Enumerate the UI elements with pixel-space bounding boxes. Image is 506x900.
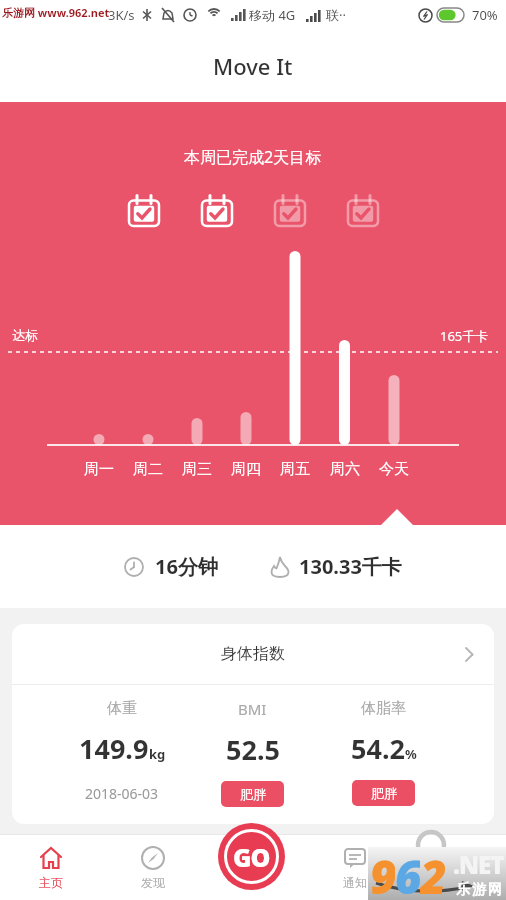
staticText: 通知 — [343, 875, 367, 890]
staticText: 16分钟 — [155, 553, 218, 580]
staticText: 本周已完成2天目标 — [184, 146, 322, 168]
staticText: Move It — [213, 51, 293, 81]
staticText: 6 — [395, 845, 420, 898]
staticText: 149.9 — [79, 730, 149, 767]
button[interactable]: 肥胖 — [221, 781, 284, 807]
staticText: 54.2 — [351, 730, 405, 767]
staticText: 2018-06-03 — [85, 784, 159, 803]
button[interactable]: 通知 — [304, 835, 405, 900]
staticText: .NET — [453, 848, 504, 881]
button[interactable]: 肥胖 — [352, 780, 415, 806]
staticText: 3K/s — [108, 6, 135, 24]
staticText: 52.5 — [226, 731, 280, 768]
staticText: 联·· — [326, 6, 346, 24]
button[interactable]: 周二 — [124, 460, 172, 479]
button[interactable]: 周三 — [173, 460, 221, 479]
button[interactable]: 周四 — [222, 460, 270, 479]
staticText: GO — [233, 840, 270, 874]
staticText: 身体指数 — [221, 644, 285, 664]
staticText: 移动 4G — [249, 6, 296, 24]
staticText: 我的 — [444, 875, 468, 890]
button[interactable]: 周六 — [321, 460, 369, 479]
staticText: 主页 — [39, 875, 63, 890]
staticText: 130.33千卡 — [299, 553, 402, 580]
staticText: 乐游网 www.962.net — [2, 5, 110, 20]
staticText: 165千卡 — [440, 327, 489, 345]
button[interactable]: 发现 — [102, 835, 203, 900]
button[interactable]: GO — [218, 823, 285, 890]
staticText: 2 — [420, 845, 445, 898]
staticText: 肥胖 — [371, 785, 397, 801]
staticText: 发现 — [141, 875, 165, 890]
staticText: kg — [149, 745, 166, 763]
staticText: BMI — [238, 699, 267, 719]
staticText: 9 — [370, 845, 395, 898]
button[interactable]: 今天 — [370, 460, 418, 479]
staticText: 体重 — [107, 699, 137, 718]
button[interactable]: 主页 — [0, 835, 102, 900]
button[interactable]: 周五 — [271, 460, 319, 479]
button[interactable]: 我的 — [405, 835, 506, 900]
staticText: 乐游网 — [455, 881, 503, 899]
button[interactable]: 周一 — [75, 460, 123, 479]
button[interactable]: 身体指数 — [12, 624, 494, 684]
staticText: 肥胖 — [240, 786, 266, 802]
staticText: 体脂率 — [361, 699, 406, 718]
staticText: 达标 — [12, 327, 38, 343]
button[interactable]: 16分钟 — [0, 525, 506, 608]
staticText: % — [405, 745, 417, 763]
staticText: 70% — [472, 6, 498, 24]
